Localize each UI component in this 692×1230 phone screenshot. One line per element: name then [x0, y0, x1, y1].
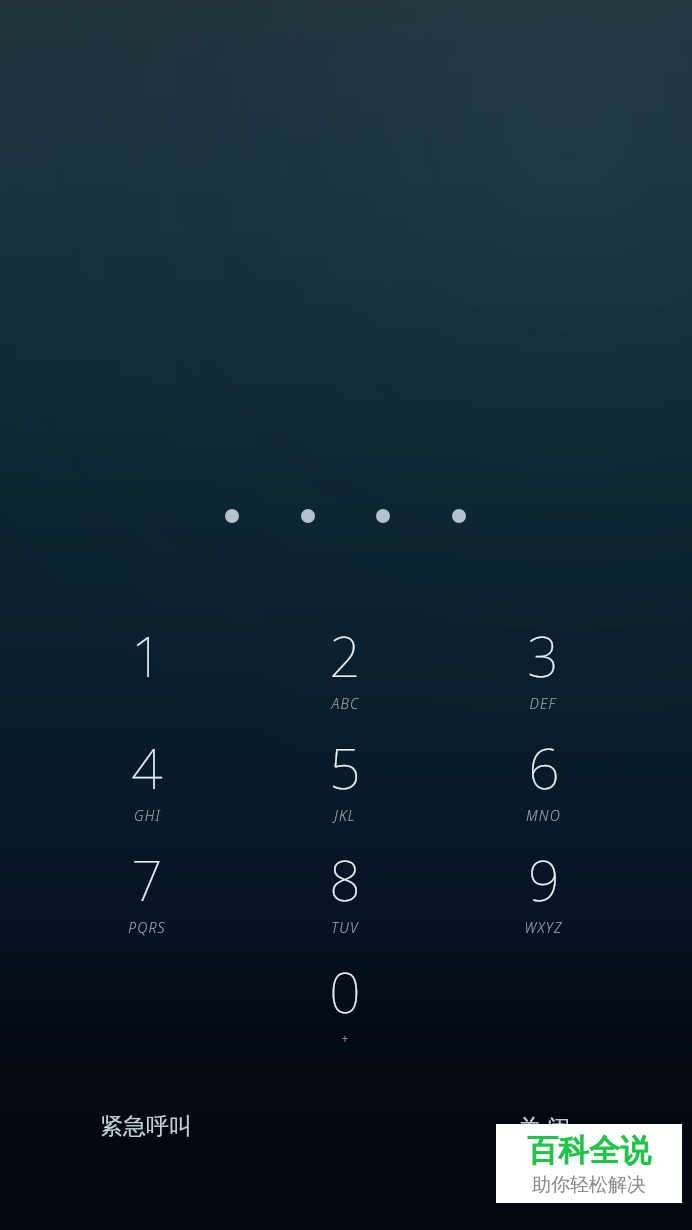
- staticText: 助你轻松解决: [532, 1173, 646, 1197]
- staticText: MNO: [526, 806, 561, 825]
- button[interactable]: Key 0: [255, 954, 435, 1062]
- button[interactable]: Key 6: [453, 730, 633, 838]
- staticText: GHI: [134, 806, 161, 825]
- button[interactable]: Key 4: [57, 730, 237, 838]
- staticText: 2: [329, 618, 361, 693]
- staticText: WXYZ: [524, 918, 563, 937]
- staticText: 4: [131, 730, 163, 805]
- button[interactable]: 关 闭: [482, 1098, 632, 1154]
- staticText: 9: [528, 842, 560, 917]
- staticText: 紧急呼叫: [100, 1112, 192, 1141]
- staticText: 6: [528, 730, 560, 805]
- staticText: 8: [329, 842, 361, 917]
- staticText: +: [341, 1030, 350, 1048]
- button[interactable]: Key 1: [57, 618, 237, 726]
- staticText: DEF: [529, 694, 557, 713]
- button[interactable]: Key 2: [255, 618, 435, 726]
- staticText: ABC: [331, 694, 360, 713]
- staticText: PQRS: [128, 918, 166, 937]
- staticText: JKL: [334, 806, 356, 825]
- staticText: 3: [527, 618, 559, 693]
- button[interactable]: 紧急呼叫: [78, 1098, 218, 1154]
- staticText: 5: [329, 730, 361, 805]
- staticText: TUV: [331, 918, 359, 937]
- staticText: 百科全说: [527, 1131, 651, 1170]
- button[interactable]: Key 5: [255, 730, 435, 838]
- button[interactable]: Key 9: [453, 842, 633, 950]
- staticText: 7: [131, 842, 163, 917]
- staticText: 关 闭: [518, 1111, 570, 1142]
- staticText: 0: [329, 954, 361, 1029]
- button[interactable]: Key 3: [453, 618, 633, 726]
- button[interactable]: Key 8: [255, 842, 435, 950]
- staticText: 1: [131, 618, 163, 693]
- button[interactable]: Key 7: [57, 842, 237, 950]
